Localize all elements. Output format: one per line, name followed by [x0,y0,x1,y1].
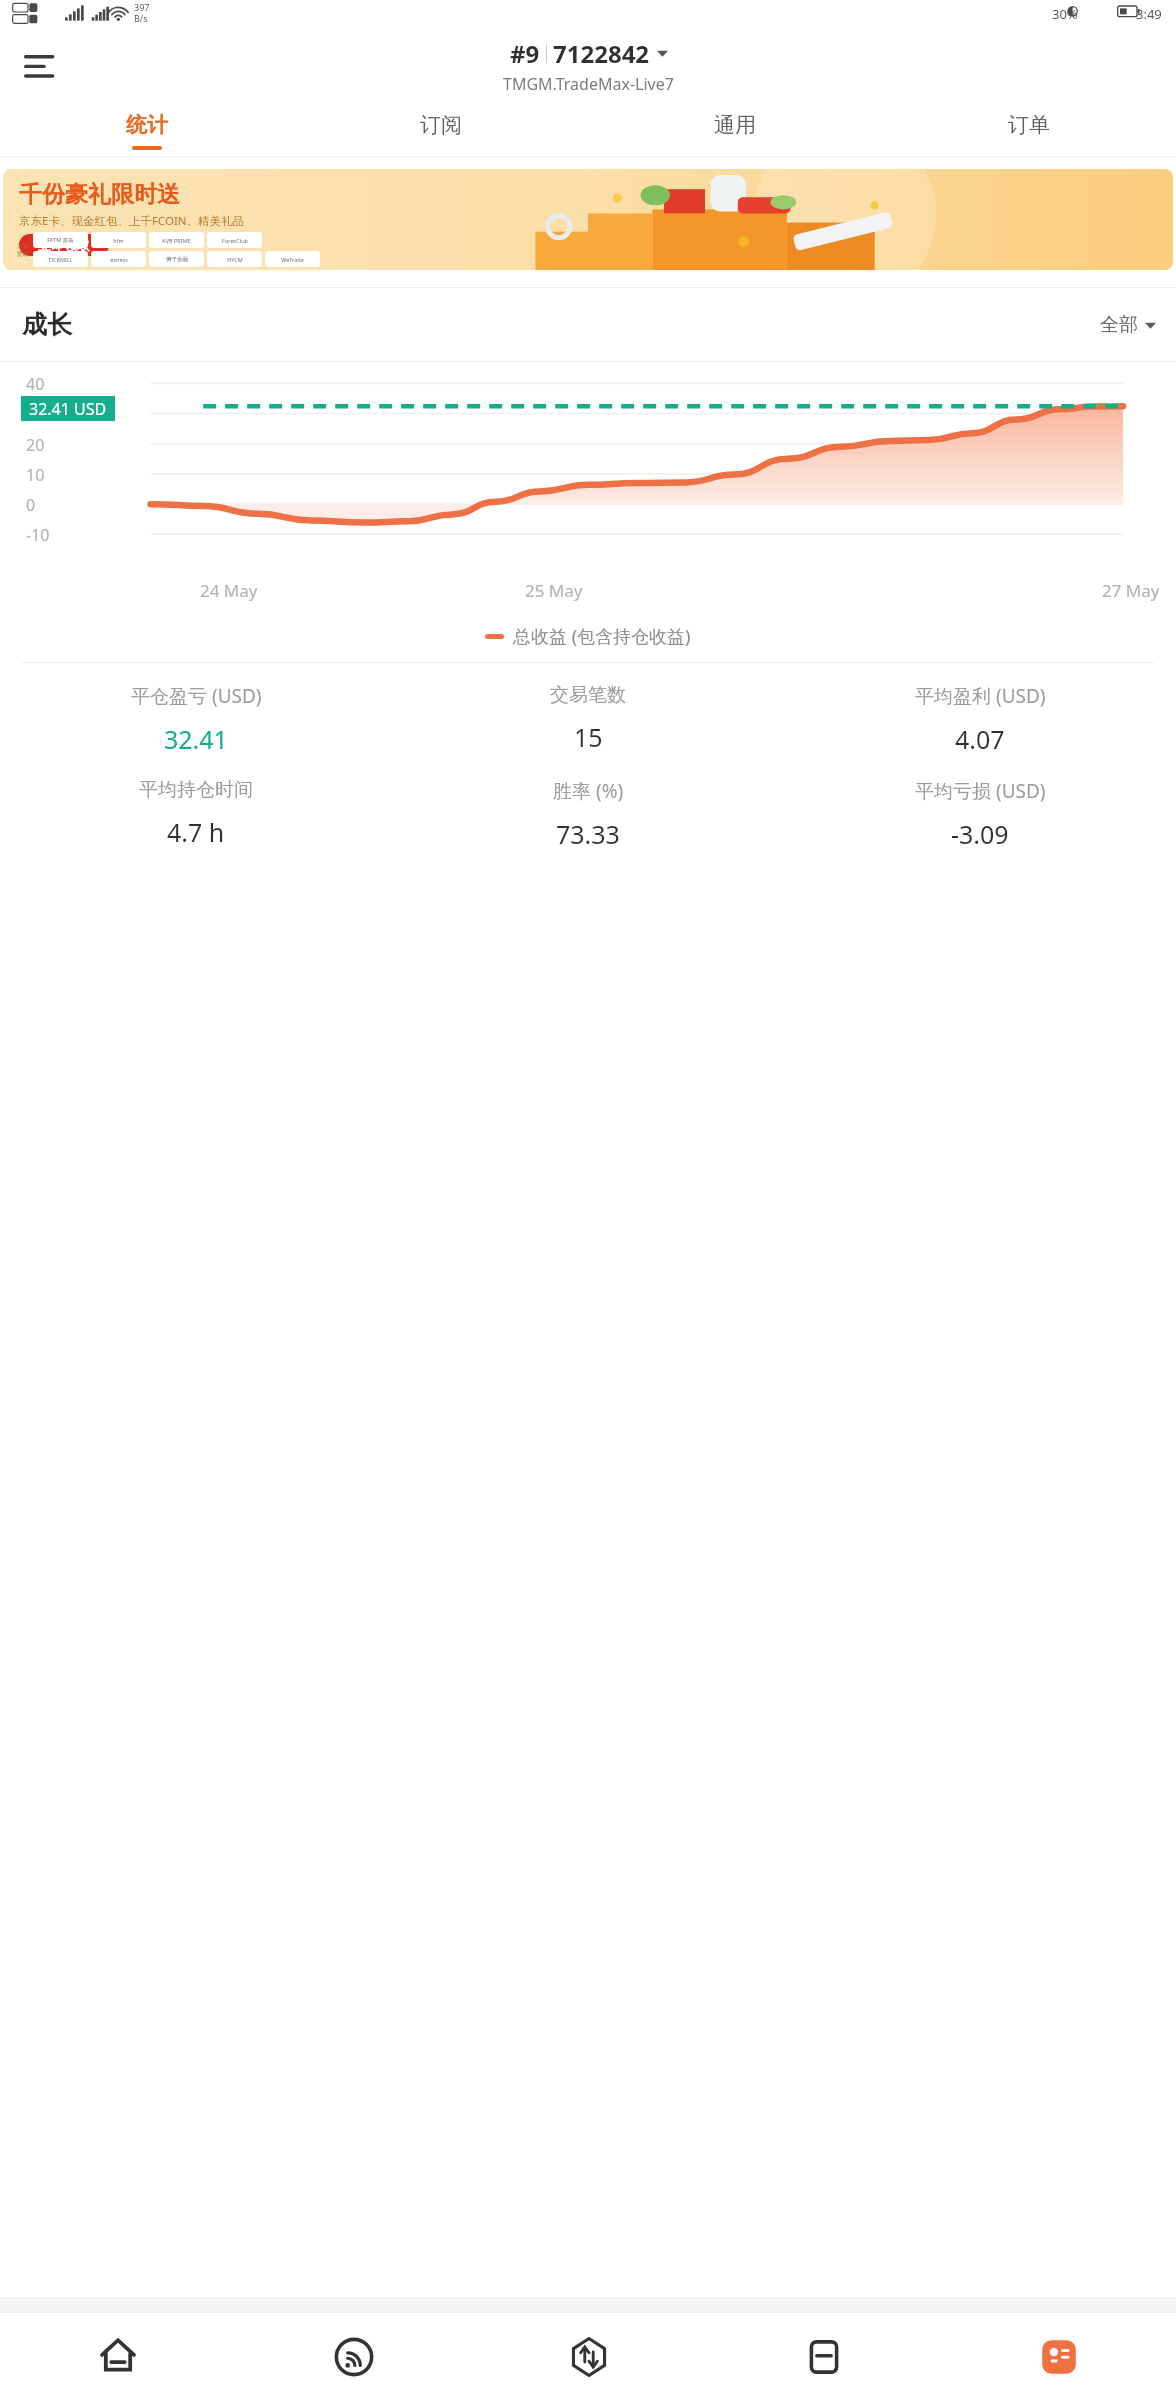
staticText: 25 May [525,579,583,602]
staticText: 成长 [22,309,72,340]
staticText: 32.41 [164,722,228,756]
staticText: 24 May [200,579,258,602]
staticText: 千份豪礼限时送 [19,180,180,209]
staticText: FXTM 富拓 [47,236,74,244]
button[interactable]: Profile [941,2313,1176,2400]
button[interactable]: 统计 [0,105,294,157]
button[interactable]: 订单 [882,105,1176,157]
button[interactable]: Menu [14,40,66,92]
staticText: ForexClub [222,237,248,244]
staticText: -3.09 [951,817,1009,851]
staticText: 30% [1052,5,1078,23]
staticText: 7122842 [553,37,650,70]
button[interactable]: Home [0,2313,236,2400]
staticText: HYCM [227,256,243,263]
staticText: 4.07 [955,722,1005,756]
staticText: 0 [26,494,36,516]
staticText: 32.41 USD [29,398,107,420]
staticText: 胜率 (%) [553,778,624,804]
button[interactable]: 交易笔数 [392,683,784,754]
staticText: WeTrade [281,256,304,263]
staticText: -10 [26,524,50,546]
button[interactable]: 千份豪礼限时送 [3,169,1173,270]
staticText: KVB PRIME [162,237,191,244]
staticText: 27 May [1102,579,1160,602]
staticText: 平均亏损 (USD) [915,778,1046,804]
button[interactable]: #9 [503,37,674,95]
staticText: 统计 [126,112,168,138]
staticText: 订阅 [420,112,462,138]
button[interactable]: Trade [471,2313,706,2400]
staticText: 397 B/s [134,1,150,24]
button[interactable]: Chat [706,2313,941,2400]
staticText: TICKMILL [48,256,73,263]
staticText: 立即领取 [38,237,90,253]
staticText: 狮子金融 [166,256,188,263]
staticText: 30 [26,404,45,426]
staticText: hfm [113,237,124,244]
staticText: 全部 [1100,313,1138,337]
staticText: 40 [26,373,45,395]
staticText: 订单 [1008,112,1050,138]
staticText: 通用 [714,112,756,138]
button[interactable]: 平均盈利 (USD) [784,683,1176,756]
staticText: 3:49 [1136,5,1162,23]
staticText: 交易笔数 [550,683,626,707]
staticText: 平仓盈亏 (USD) [131,683,262,709]
staticText: 10 [26,464,45,486]
staticText: #9 [510,37,540,70]
button[interactable]: 平均持仓时间 [0,778,392,849]
button[interactable]: 订阅 [294,105,588,157]
staticText: 平均持仓时间 [139,778,253,802]
staticText: 京东E卡、现金红包、上千FCOIN、精美礼品 [19,213,245,229]
staticText: 73.33 [556,817,620,851]
button[interactable]: 平均亏损 (USD) [784,778,1176,851]
staticText: 20 [26,434,45,456]
button[interactable]: 通用 [588,105,882,157]
staticText: 15 [574,720,603,754]
staticText: 大赛 [17,242,29,250]
staticText: exness [110,256,128,263]
staticText: 4.7 h [167,815,225,849]
staticText: 总收益 (包含持仓收益) [513,624,691,649]
staticText: 赞助 [17,250,29,258]
button[interactable]: Signals [236,2313,471,2400]
button[interactable]: 胜率 (%) [392,778,784,851]
staticText: 平均盈利 (USD) [915,683,1046,709]
button[interactable]: 全部 [1100,313,1156,337]
button[interactable]: 平仓盈亏 (USD) [0,683,392,756]
staticText: TMGM.TradeMax-Live7 [503,73,674,95]
